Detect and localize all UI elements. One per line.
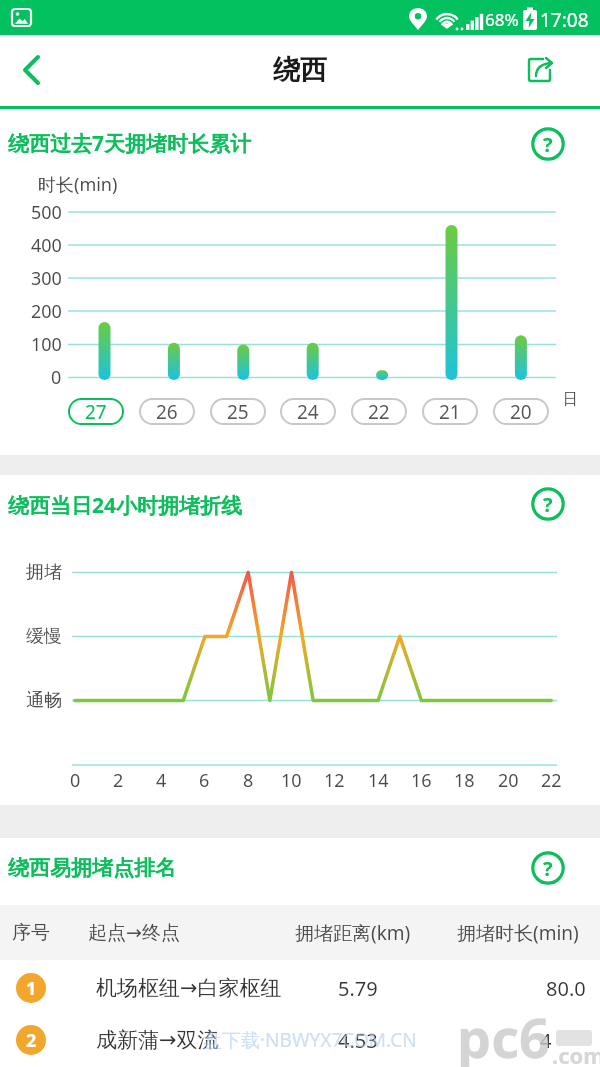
staticText: 26 <box>156 399 178 425</box>
staticText: 成新蒲→双流 <box>96 1027 219 1053</box>
staticText: 16 <box>411 768 432 792</box>
staticText: 200 <box>31 299 62 323</box>
staticText: 绕西易拥堵点排名 <box>8 855 176 881</box>
staticText: 22 <box>368 399 390 425</box>
button[interactable]: 25 <box>210 398 266 425</box>
staticText: 12 <box>324 768 345 792</box>
button[interactable]: 27 <box>68 398 124 425</box>
staticText: 日 <box>563 390 578 409</box>
staticText: ? <box>543 131 553 158</box>
staticText: 序号 <box>12 921 50 945</box>
staticText: 2 <box>113 768 124 792</box>
button[interactable] <box>8 42 56 98</box>
staticText: 0 <box>70 768 81 792</box>
button[interactable]: 20 <box>493 398 549 425</box>
staticText: 拥堵时长(min) <box>457 920 579 946</box>
staticText: 起点→终点 <box>88 921 180 945</box>
staticText: 18 <box>454 768 475 792</box>
staticText: 500 <box>31 200 62 224</box>
staticText: 通畅 <box>26 689 62 712</box>
staticText: 300 <box>31 266 62 290</box>
staticText: 绕西 <box>273 53 327 87</box>
staticText: pc6 <box>457 1000 550 1067</box>
button[interactable]: 22 <box>351 398 407 425</box>
button[interactable]: 26 <box>139 398 195 425</box>
staticText: 拥堵距离(km) <box>295 920 411 946</box>
staticText: 24 <box>297 399 319 425</box>
staticText: 14 <box>368 768 389 792</box>
button[interactable]: ? <box>528 484 568 524</box>
staticText: 时长(min) <box>38 172 118 197</box>
staticText: .com <box>552 1040 600 1066</box>
staticText: 机场枢纽→白家枢纽 <box>96 975 282 1001</box>
staticText: 8 <box>243 768 254 792</box>
staticText: 21 <box>439 399 461 425</box>
staticText: 2 <box>26 1028 37 1053</box>
staticText: 盘下载·NBWYX7COM.CN <box>203 1027 417 1053</box>
button[interactable] <box>0 960 600 1012</box>
staticText: 4.53 <box>338 1027 378 1053</box>
staticText: 绕西当日24小时拥堵折线 <box>8 491 243 520</box>
button[interactable] <box>516 45 566 95</box>
staticText: 100 <box>31 332 62 356</box>
staticText: 5.79 <box>338 975 378 1001</box>
staticText: 绕西过去7天拥堵时长累计 <box>8 129 252 158</box>
staticText: 68% <box>485 8 519 31</box>
staticText: 27 <box>85 399 107 425</box>
staticText: 6 <box>199 768 210 792</box>
button[interactable] <box>0 1014 600 1067</box>
staticText: 缓慢 <box>26 625 62 648</box>
staticText: 拥堵 <box>26 561 62 584</box>
staticText: 25 <box>227 399 249 425</box>
staticText: 17:08 <box>540 7 589 33</box>
staticText: 4 <box>156 768 167 792</box>
staticText: 0 <box>51 365 62 389</box>
button[interactable]: ? <box>528 848 568 888</box>
staticText: ? <box>543 855 553 882</box>
staticText: 22 <box>541 768 562 792</box>
staticText: 4 <box>540 1027 552 1053</box>
staticText: ? <box>543 491 553 518</box>
staticText: 20 <box>498 768 519 792</box>
button[interactable]: 21 <box>422 398 478 425</box>
staticText: 20 <box>510 399 532 425</box>
button[interactable]: ? <box>528 124 568 164</box>
staticText: 80.0 <box>546 975 586 1001</box>
staticText: 1 <box>26 976 37 1001</box>
staticText: 10 <box>281 768 302 792</box>
button[interactable]: 24 <box>280 398 336 425</box>
staticText: 400 <box>31 233 62 257</box>
